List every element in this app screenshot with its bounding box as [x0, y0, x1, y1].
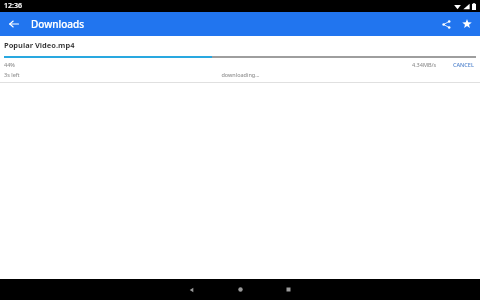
button[interactable]: Share: [437, 15, 455, 33]
button[interactable]: Recent apps: [271, 279, 305, 300]
button[interactable]: Popular Video.mp4: [0, 36, 480, 83]
button[interactable]: Back: [175, 279, 209, 300]
staticText: CANCEL: [453, 61, 474, 68]
staticText: Downloads: [31, 17, 85, 31]
staticText: 12:36: [4, 1, 22, 11]
button[interactable]: Back: [5, 15, 23, 33]
staticText: Popular Video.mp4: [4, 40, 75, 50]
button[interactable]: Home: [223, 279, 257, 300]
staticText: 4.34MB/s: [412, 61, 437, 68]
staticText: downloading...: [221, 71, 260, 78]
staticText: 3s left: [4, 71, 20, 78]
button[interactable]: Favorite: [458, 15, 476, 33]
staticText: 44%: [4, 61, 15, 68]
button[interactable]: CANCEL: [451, 60, 476, 69]
